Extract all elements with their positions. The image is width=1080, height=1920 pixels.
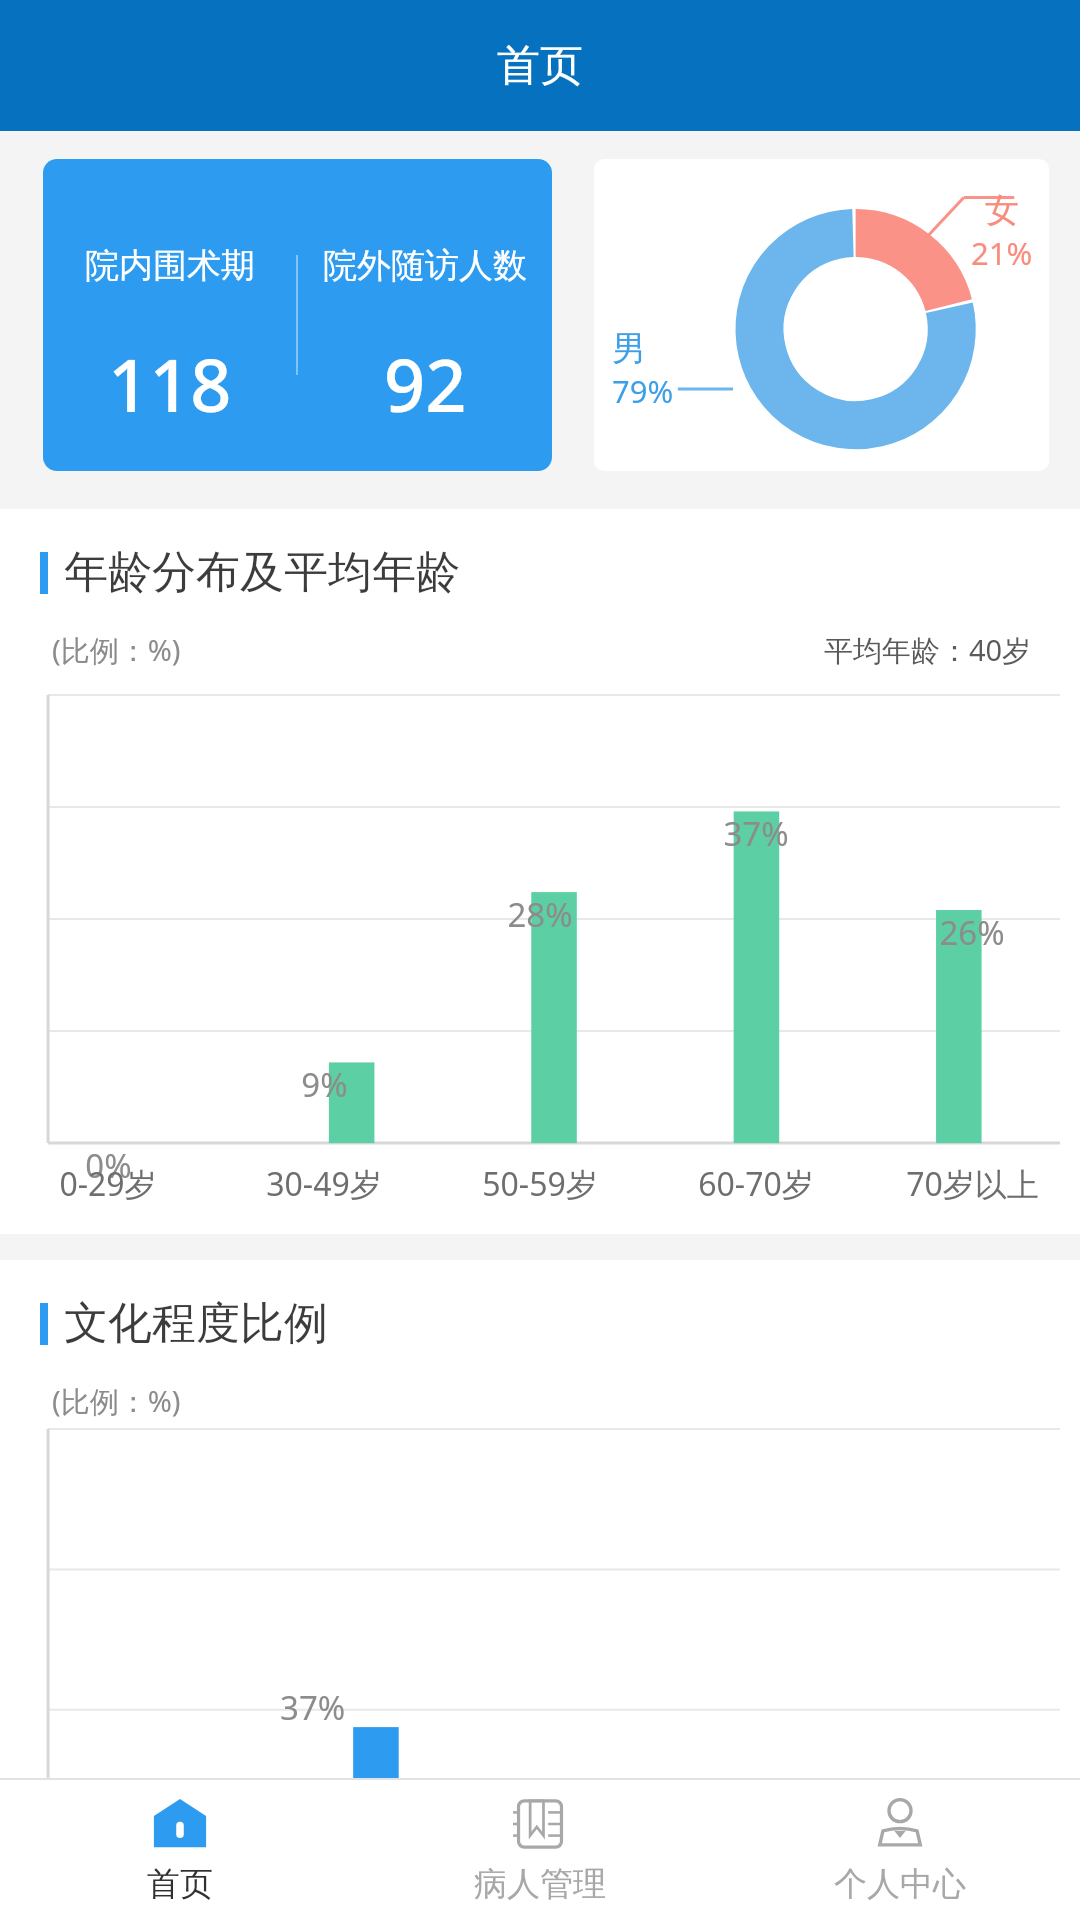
- staticText: 平均年龄：40岁: [824, 630, 1032, 670]
- staticText: 60-70岁: [698, 1162, 814, 1206]
- button[interactable]: 首页: [0, 1780, 360, 1920]
- staticText: 首页: [497, 39, 583, 93]
- staticText: 病人管理: [474, 1863, 606, 1905]
- staticText: 118: [108, 335, 232, 433]
- staticText: 70岁以上: [906, 1162, 1039, 1206]
- staticText: 37%: [280, 1685, 346, 1730]
- button[interactable]: 女: [594, 159, 1049, 471]
- staticText: 92: [384, 335, 467, 433]
- staticText: 79%: [612, 370, 674, 412]
- staticText: (比例：%): [52, 630, 181, 670]
- staticText: 院内围术期: [85, 244, 255, 287]
- staticText: 年龄分布及平均年龄: [64, 545, 460, 600]
- staticText: 37%: [723, 811, 789, 856]
- staticText: 个人中心: [834, 1863, 966, 1905]
- staticText: 首页: [147, 1863, 213, 1905]
- button[interactable]: 个人中心: [720, 1780, 1080, 1920]
- staticText: 男: [612, 327, 646, 370]
- staticText: 女: [985, 189, 1019, 232]
- staticText: 0%: [85, 1143, 132, 1188]
- button[interactable]: 病人管理: [360, 1780, 720, 1920]
- staticText: 21%: [971, 232, 1033, 274]
- staticText: 院外随访人数: [323, 244, 527, 287]
- button[interactable]: 院内围术期: [43, 159, 552, 471]
- staticText: 文化程度比例: [64, 1296, 328, 1351]
- staticText: (比例：%): [52, 1381, 181, 1421]
- staticText: 30-49岁: [266, 1162, 382, 1206]
- staticText: 50-59岁: [482, 1162, 598, 1206]
- staticText: 0-29岁: [59, 1162, 157, 1206]
- staticText: 28%: [507, 892, 573, 937]
- staticText: 26%: [939, 910, 1005, 955]
- staticText: 9%: [301, 1062, 348, 1107]
